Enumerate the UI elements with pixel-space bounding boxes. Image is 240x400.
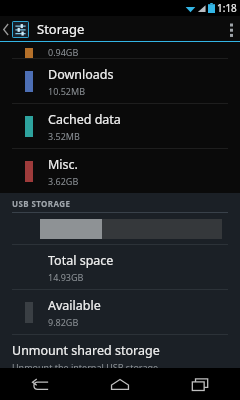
- staticText: 10.52MB: [48, 85, 86, 97]
- staticText: Unmount shared storage: [12, 342, 160, 359]
- button[interactable]: 0.94GB: [0, 42, 240, 59]
- staticText: Cached data: [48, 111, 121, 128]
- button[interactable]: Available: [0, 290, 240, 335]
- staticText: Total space: [48, 252, 114, 269]
- staticText: 1:18: [217, 1, 237, 15]
- button[interactable]: Unmount shared storage: [0, 335, 240, 368]
- button[interactable]: Misc.: [0, 149, 240, 193]
- staticText: 3.62GB: [48, 175, 79, 187]
- staticText: 0.94GB: [48, 46, 79, 58]
- staticText: Downloads: [48, 66, 114, 83]
- staticText: USB STORAGE: [12, 198, 71, 209]
- staticText: Unmount the internal USB storage: [12, 361, 159, 368]
- button[interactable]: Recent apps: [160, 368, 240, 400]
- button[interactable]: Home: [80, 368, 160, 400]
- staticText: Misc.: [48, 156, 78, 173]
- staticText: Available: [48, 297, 101, 314]
- button[interactable]: Navigate up: [0, 16, 31, 42]
- staticText: 3.52MB: [48, 130, 80, 142]
- button[interactable]: Cached data: [0, 104, 240, 149]
- button[interactable]: Back: [0, 368, 80, 400]
- staticText: 9.82GB: [48, 316, 79, 328]
- button[interactable]: Downloads: [0, 59, 240, 104]
- button[interactable]: Total space: [0, 245, 240, 290]
- staticText: Storage: [37, 20, 85, 38]
- staticText: 14.93GB: [48, 271, 84, 283]
- button[interactable]: More options: [222, 16, 240, 42]
